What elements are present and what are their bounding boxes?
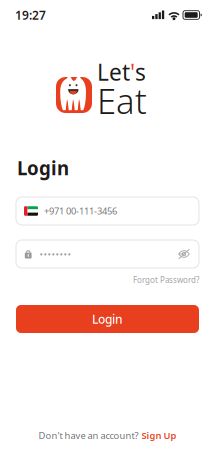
- staticText: Login: [17, 156, 69, 180]
- staticText: 19:27: [15, 7, 46, 23]
- button[interactable]: Sign Up: [141, 431, 176, 440]
- staticText: s: [135, 57, 146, 87]
- staticText: Let: [97, 57, 130, 87]
- staticText: Login: [92, 311, 123, 327]
- button[interactable]: Forgot Password?: [133, 275, 199, 285]
- staticText: Eat: [97, 77, 147, 123]
- staticText: Don't have an account?: [38, 429, 138, 442]
- staticText: Sign Up: [141, 429, 176, 442]
- staticText: +971 00-111-3456: [44, 205, 117, 217]
- button[interactable]: Login: [16, 305, 199, 333]
- staticText: Forgot Password?: [133, 275, 199, 285]
- staticText: ••••••••: [40, 248, 72, 260]
- staticText: ': [130, 57, 135, 87]
- button[interactable]: Show password: [168, 240, 190, 267]
